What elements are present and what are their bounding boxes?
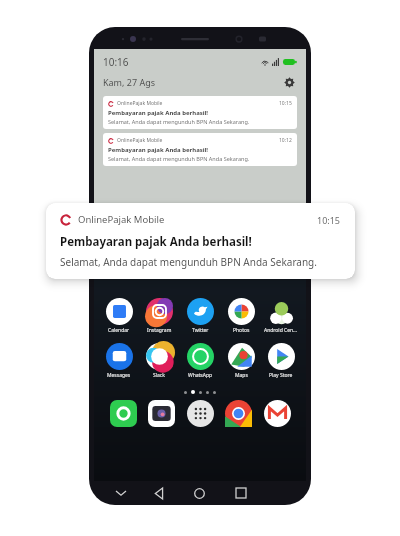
- button[interactable]: Twitter: [180, 298, 220, 334]
- button[interactable]: Phone: [110, 400, 137, 427]
- button[interactable]: Camera: [148, 400, 175, 427]
- button[interactable]: OnlinePajak Mobile: [103, 133, 297, 166]
- button[interactable]: Chrome: [225, 400, 252, 427]
- button[interactable]: Back: [139, 481, 179, 505]
- button[interactable]: Maps: [221, 343, 261, 379]
- staticText: 10:15: [317, 214, 341, 226]
- button[interactable]: Instagram: [139, 298, 179, 334]
- button[interactable]: Home: [179, 481, 220, 505]
- button[interactable]: Calendar: [99, 298, 139, 334]
- staticText: Messages: [107, 372, 131, 379]
- staticText: 10:12: [279, 137, 292, 144]
- staticText: 10:16: [103, 55, 129, 69]
- button[interactable]: Settings: [281, 74, 297, 90]
- staticText: Instagram: [147, 327, 172, 334]
- staticText: OnlinePajak Mobile: [117, 100, 163, 107]
- button[interactable]: Hide keyboard: [103, 481, 139, 505]
- staticText: Selamat, Anda dapat mengunduh BPN Anda S…: [108, 118, 250, 125]
- button[interactable]: Messages: [99, 343, 139, 379]
- staticText: OnlinePajak Mobile: [117, 137, 163, 144]
- staticText: Maps: [235, 372, 248, 379]
- staticText: Calendar: [108, 327, 130, 334]
- staticText: WhatsApp: [188, 372, 213, 379]
- staticText: Pembayaran pajak Anda berhasil!: [108, 146, 209, 154]
- button[interactable]: Recent apps: [220, 481, 261, 505]
- button[interactable]: Photos: [221, 298, 261, 334]
- staticText: Pembayaran pajak Anda berhasil!: [108, 109, 209, 117]
- staticText: OnlinePajak Mobile: [78, 213, 165, 226]
- staticText: 10:15: [279, 100, 292, 107]
- staticText: Twitter: [192, 327, 209, 334]
- staticText: Photos: [233, 327, 250, 334]
- staticText: Selamat, Anda dapat mengunduh BPN Anda S…: [60, 255, 317, 269]
- button[interactable]: Android Cen…: [261, 298, 301, 334]
- staticText: Play Store: [269, 372, 293, 379]
- button[interactable]: All apps: [187, 400, 214, 427]
- button[interactable]: WhatsApp: [180, 343, 220, 379]
- button[interactable]: Slack: [139, 343, 179, 379]
- staticText: Slack: [153, 372, 165, 379]
- button[interactable]: Play Store: [261, 343, 301, 379]
- staticText: Kam, 27 Ags: [103, 76, 156, 88]
- button[interactable]: OnlinePajak Mobile: [103, 96, 297, 129]
- staticText: Pembayaran pajak Anda berhasil!: [60, 234, 252, 250]
- button[interactable]: Gmail: [264, 400, 291, 427]
- staticText: Android Cen…: [264, 327, 298, 334]
- button[interactable]: OnlinePajak Mobile: [46, 203, 355, 279]
- staticText: Selamat, Anda dapat mengunduh BPN Anda S…: [108, 155, 250, 162]
